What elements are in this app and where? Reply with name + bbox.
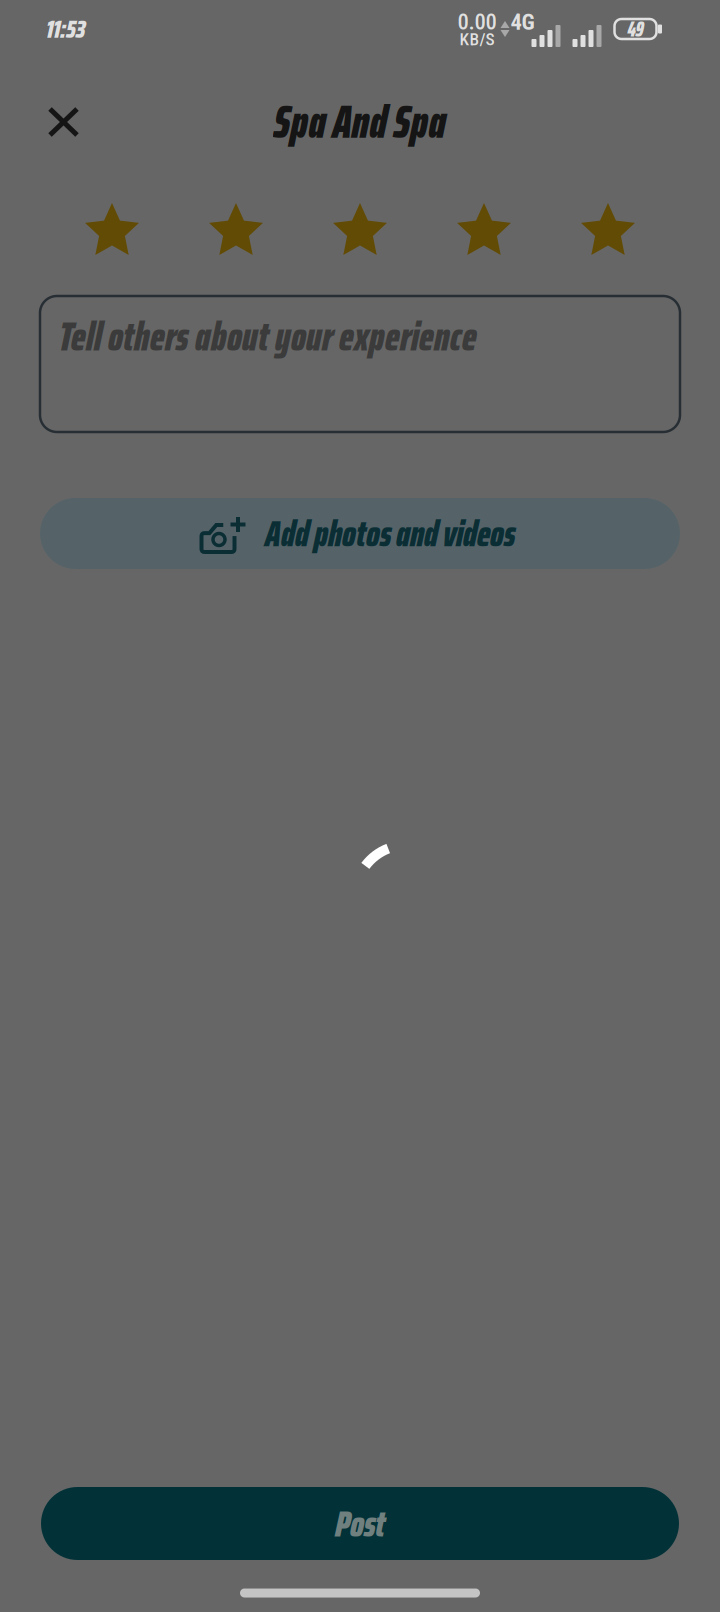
button[interactable]: Rate [174,191,298,267]
button[interactable]: Close [32,91,95,153]
button[interactable]: Rate [422,191,546,267]
button[interactable]: Add photos and videos [40,498,680,569]
button[interactable]: Rate [546,191,670,267]
staticText: 4G [510,9,534,35]
staticText: 49 [627,12,643,46]
staticText: KB/S [459,29,494,49]
button[interactable]: Post [41,1487,679,1560]
button[interactable]: Rate [50,191,174,267]
staticText: Tell others about your experience [59,305,477,368]
staticText: 11:53 [46,9,85,49]
staticText: Spa And Spa [273,86,446,158]
staticText: 0.00 [457,9,496,35]
staticText: Post [335,1494,385,1553]
button[interactable]: Rate [298,191,422,267]
staticText: Add photos and videos [265,505,515,562]
